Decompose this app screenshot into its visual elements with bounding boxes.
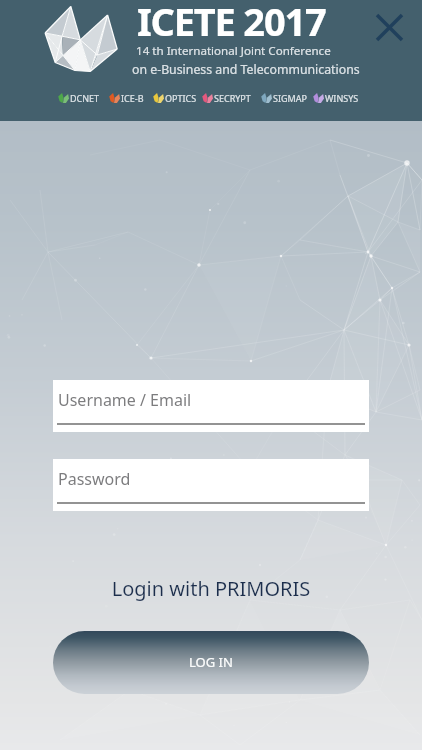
staticText: DCNET: [70, 92, 100, 104]
staticText: OPTICS: [165, 92, 197, 104]
staticText: ICETE 2017: [137, 0, 326, 47]
button[interactable]: Username / Email: [53, 380, 369, 432]
staticText: LOG IN: [189, 653, 233, 671]
staticText: on e-Business and Telecommunications: [132, 61, 360, 78]
staticText: 14 th International Joint Conference: [136, 43, 331, 59]
button[interactable]: Close: [371, 9, 408, 46]
staticText: SIGMAP: [273, 92, 307, 104]
button[interactable]: LOG IN: [53, 631, 369, 694]
staticText: WINSYS: [325, 92, 359, 104]
staticText: Password: [58, 468, 131, 490]
staticText: Login with PRIMORIS: [0, 575, 422, 602]
staticText: ICE-B: [121, 92, 144, 104]
staticText: Username / Email: [58, 389, 192, 411]
staticText: SECRYPT: [214, 92, 251, 104]
button[interactable]: Password: [53, 459, 369, 511]
